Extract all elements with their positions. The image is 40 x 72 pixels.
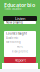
staticText: View profile xyxy=(11,50,28,53)
staticText: Listen xyxy=(15,16,25,21)
staticText: Report xyxy=(14,57,25,63)
staticText: Now playing xyxy=(6,21,23,24)
staticText: More xyxy=(16,45,23,48)
staticText: Educator bio xyxy=(4,1,35,9)
button[interactable]: Report xyxy=(4,57,36,63)
staticText: Courses taught xyxy=(6,32,27,35)
button[interactable]: Now playing xyxy=(4,21,36,24)
staticText: Talk audio xyxy=(4,6,21,11)
button[interactable]: Play audio xyxy=(3,16,37,21)
staticText: Academic xyxy=(6,36,18,40)
staticText: Mentoring xyxy=(6,40,21,44)
